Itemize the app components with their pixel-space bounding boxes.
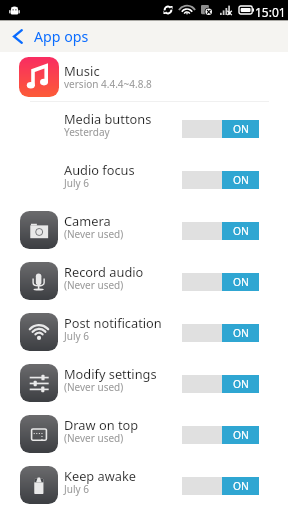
button[interactable]: Record audio — [0, 255, 288, 306]
staticText: ON — [233, 326, 249, 340]
staticText: 15:01 — [255, 4, 286, 20]
staticText: ON — [233, 173, 249, 187]
button[interactable]: Toggle Record audio — [182, 273, 259, 291]
staticText: (Never used) — [64, 431, 124, 445]
staticText: Keep awake — [64, 467, 137, 484]
staticText: ON — [233, 479, 249, 493]
button[interactable]: Toggle Draw on top — [182, 426, 259, 444]
staticText: version 4.4.4~4.8.8 — [64, 77, 152, 91]
staticText: ON — [233, 122, 249, 136]
staticText: App ops — [34, 27, 89, 46]
button[interactable]: Audio focus — [0, 153, 288, 204]
staticText: Yesterday — [64, 125, 110, 139]
staticText: July 6 — [64, 329, 89, 343]
staticText: July 6 — [64, 176, 89, 190]
staticText: Media buttons — [64, 110, 152, 127]
staticText: ON — [233, 224, 249, 238]
staticText: (Never used) — [64, 227, 124, 241]
button[interactable]: Modify settings — [0, 357, 288, 408]
staticText: (Never used) — [64, 278, 124, 292]
button[interactable]: Toggle Media buttons — [182, 120, 259, 138]
staticText: Audio focus — [64, 161, 135, 178]
button[interactable]: Toggle Keep awake — [182, 477, 259, 495]
button[interactable]: Draw on top — [0, 408, 288, 459]
button[interactable]: Media buttons — [0, 102, 288, 153]
staticText: ON — [233, 428, 249, 442]
button[interactable]: Keep awake — [0, 459, 288, 510]
button[interactable]: Camera — [0, 204, 288, 255]
staticText: ON — [233, 275, 249, 289]
staticText: (Never used) — [64, 380, 124, 394]
staticText: Music — [64, 62, 100, 80]
staticText: Draw on top — [64, 416, 139, 433]
button[interactable]: Music — [0, 52, 288, 102]
button[interactable]: Post notification — [0, 306, 288, 357]
button[interactable]: Back to App ops — [0, 20, 288, 52]
button[interactable]: Toggle Camera — [182, 222, 259, 240]
button[interactable]: Toggle Modify settings — [182, 375, 259, 393]
staticText: Post notification — [64, 314, 162, 331]
staticText: ON — [233, 377, 249, 391]
staticText: July 6 — [64, 482, 89, 496]
button[interactable]: Toggle Post notification — [182, 324, 259, 342]
staticText: Record audio — [64, 263, 144, 280]
staticText: Modify settings — [64, 365, 157, 382]
staticText: Camera — [64, 212, 111, 229]
button[interactable]: Toggle Audio focus — [182, 171, 259, 189]
